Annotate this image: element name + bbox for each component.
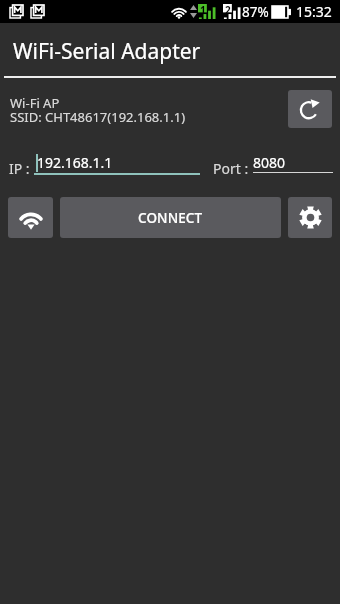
button[interactable]: Refresh (288, 90, 332, 128)
staticText: 192.168.1.1 (37, 153, 113, 172)
button[interactable]: CONNECT (60, 197, 281, 238)
staticText: 15:32 (296, 2, 332, 21)
button[interactable]: Settings (288, 197, 332, 238)
staticText: WiFi-Serial Adapter (13, 37, 201, 66)
staticText: 1 (200, 3, 206, 17)
staticText: 8080 (253, 153, 286, 172)
staticText: CONNECT (138, 209, 203, 227)
staticText: 87% (242, 3, 269, 21)
staticText: IP : (9, 159, 30, 178)
staticText: Port : (213, 159, 249, 178)
staticText: Wi-Fi AP (10, 94, 60, 112)
staticText: 2 (225, 3, 231, 17)
button[interactable]: Wi-Fi settings (8, 197, 53, 238)
staticText: SSID: CHT48617(192.168.1.1) (10, 108, 186, 126)
